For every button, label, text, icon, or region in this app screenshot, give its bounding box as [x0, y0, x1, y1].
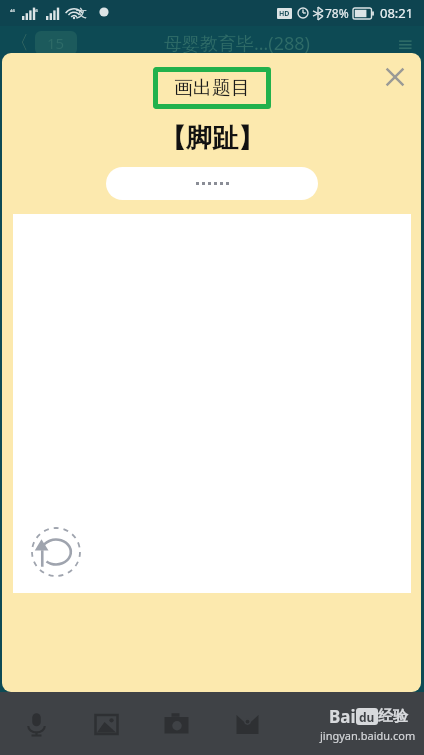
staticText: HD	[279, 9, 290, 19]
staticText: 母婴教育毕…(288)	[164, 31, 310, 56]
staticText: 15	[47, 33, 65, 53]
staticText: 经验	[378, 707, 408, 726]
button[interactable]: Close	[371, 53, 419, 101]
staticText: 画出题目	[174, 76, 250, 100]
button[interactable]: Send	[226, 703, 268, 745]
staticText: du	[359, 709, 375, 725]
staticText: 【脚趾】	[160, 122, 264, 155]
button[interactable]: Camera	[155, 703, 197, 745]
button[interactable]: Undo	[30, 526, 82, 578]
staticText: Bai	[329, 705, 356, 728]
button[interactable]: Voice input	[15, 703, 57, 745]
staticText: ≡	[397, 32, 414, 55]
staticText: 〈	[10, 31, 29, 55]
staticText: 08:21	[380, 4, 414, 22]
button[interactable]: 画出题目	[153, 67, 271, 109]
button[interactable]: Gallery	[85, 703, 127, 745]
staticText: 78%	[325, 5, 349, 21]
button[interactable]	[106, 167, 318, 200]
staticText: 文	[76, 6, 87, 20]
button[interactable]: Undo	[13, 214, 411, 593]
staticText: jingyan.baidu.com	[320, 728, 416, 743]
staticText: ⁴⁶	[10, 8, 15, 18]
staticText: ³⁶	[33, 8, 38, 18]
